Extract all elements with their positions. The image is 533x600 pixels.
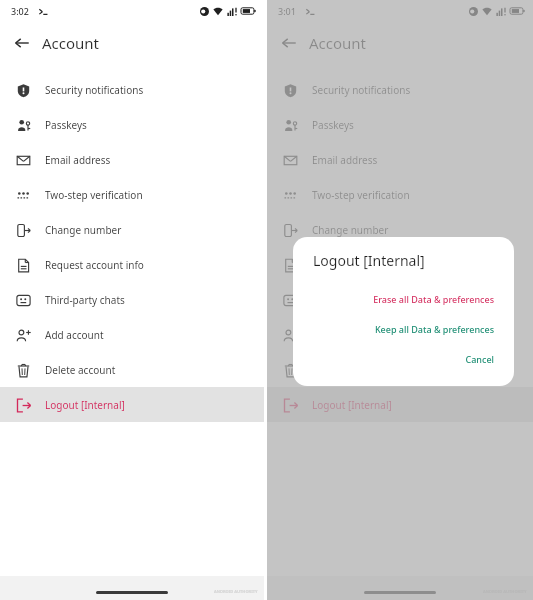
button[interactable]: Add account xyxy=(0,317,264,352)
button[interactable]: Passkeys xyxy=(0,107,264,142)
button[interactable]: Third-party chats xyxy=(267,282,533,317)
staticText: Account xyxy=(42,33,100,53)
staticText: Logout [Internal] xyxy=(45,398,125,412)
staticText: 3:01 xyxy=(278,5,296,17)
staticText: Delete account xyxy=(45,363,116,377)
staticText: Change number xyxy=(45,223,122,237)
staticText: Logout [Internal] xyxy=(313,251,425,270)
button[interactable]: Keep all Data & preferences xyxy=(293,314,514,344)
button[interactable]: Passkeys xyxy=(267,107,533,142)
staticText: ANDROID AUTHORITY xyxy=(214,589,258,594)
staticText: Two-step verification xyxy=(45,188,143,202)
staticText: Erase all Data & preferences xyxy=(373,293,494,305)
button[interactable]: Request account info xyxy=(0,247,264,282)
button[interactable]: Delete account xyxy=(267,352,533,387)
button[interactable]: Erase all Data & preferences xyxy=(293,284,514,314)
staticText: Third-party chats xyxy=(45,293,125,307)
button[interactable]: Change number xyxy=(0,212,264,247)
staticText: Email address xyxy=(45,153,111,167)
button[interactable]: Logout [Internal] xyxy=(267,387,533,422)
button[interactable]: Security notifications xyxy=(0,72,264,107)
button[interactable]: Two-step verification xyxy=(0,177,264,212)
button[interactable]: Logout [Internal] xyxy=(0,387,264,422)
button[interactable]: Two-step verification xyxy=(267,177,533,212)
button[interactable]: Cancel xyxy=(293,344,514,374)
staticText: Passkeys xyxy=(45,118,87,132)
staticText: Third-party chats xyxy=(312,293,392,307)
button[interactable]: Third-party chats xyxy=(0,282,264,317)
button[interactable]: Request account info xyxy=(267,247,533,282)
staticText: Request account info xyxy=(312,258,411,272)
button[interactable]: Security notifications xyxy=(267,72,533,107)
button[interactable]: Email address xyxy=(267,142,533,177)
button[interactable]: Back xyxy=(273,27,305,59)
button[interactable]: Email address xyxy=(0,142,264,177)
staticText: Passkeys xyxy=(312,118,354,132)
staticText: Change number xyxy=(312,223,389,237)
staticText: Email address xyxy=(312,153,378,167)
staticText: Keep all Data & preferences xyxy=(374,323,494,335)
staticText: Add account xyxy=(45,328,104,342)
staticText: Security notifications xyxy=(45,83,144,97)
button[interactable]: Delete account xyxy=(0,352,264,387)
staticText: 3:02 xyxy=(11,5,29,17)
button[interactable]: Change number xyxy=(267,212,533,247)
staticText: Account xyxy=(309,33,367,53)
staticText: Request account info xyxy=(45,258,144,272)
staticText: Cancel xyxy=(465,353,494,365)
staticText: Logout [Internal] xyxy=(312,398,392,412)
staticText: Two-step verification xyxy=(312,188,410,202)
staticText: Security notifications xyxy=(312,83,411,97)
button[interactable]: Back xyxy=(6,27,38,59)
button[interactable]: Add account xyxy=(267,317,533,352)
